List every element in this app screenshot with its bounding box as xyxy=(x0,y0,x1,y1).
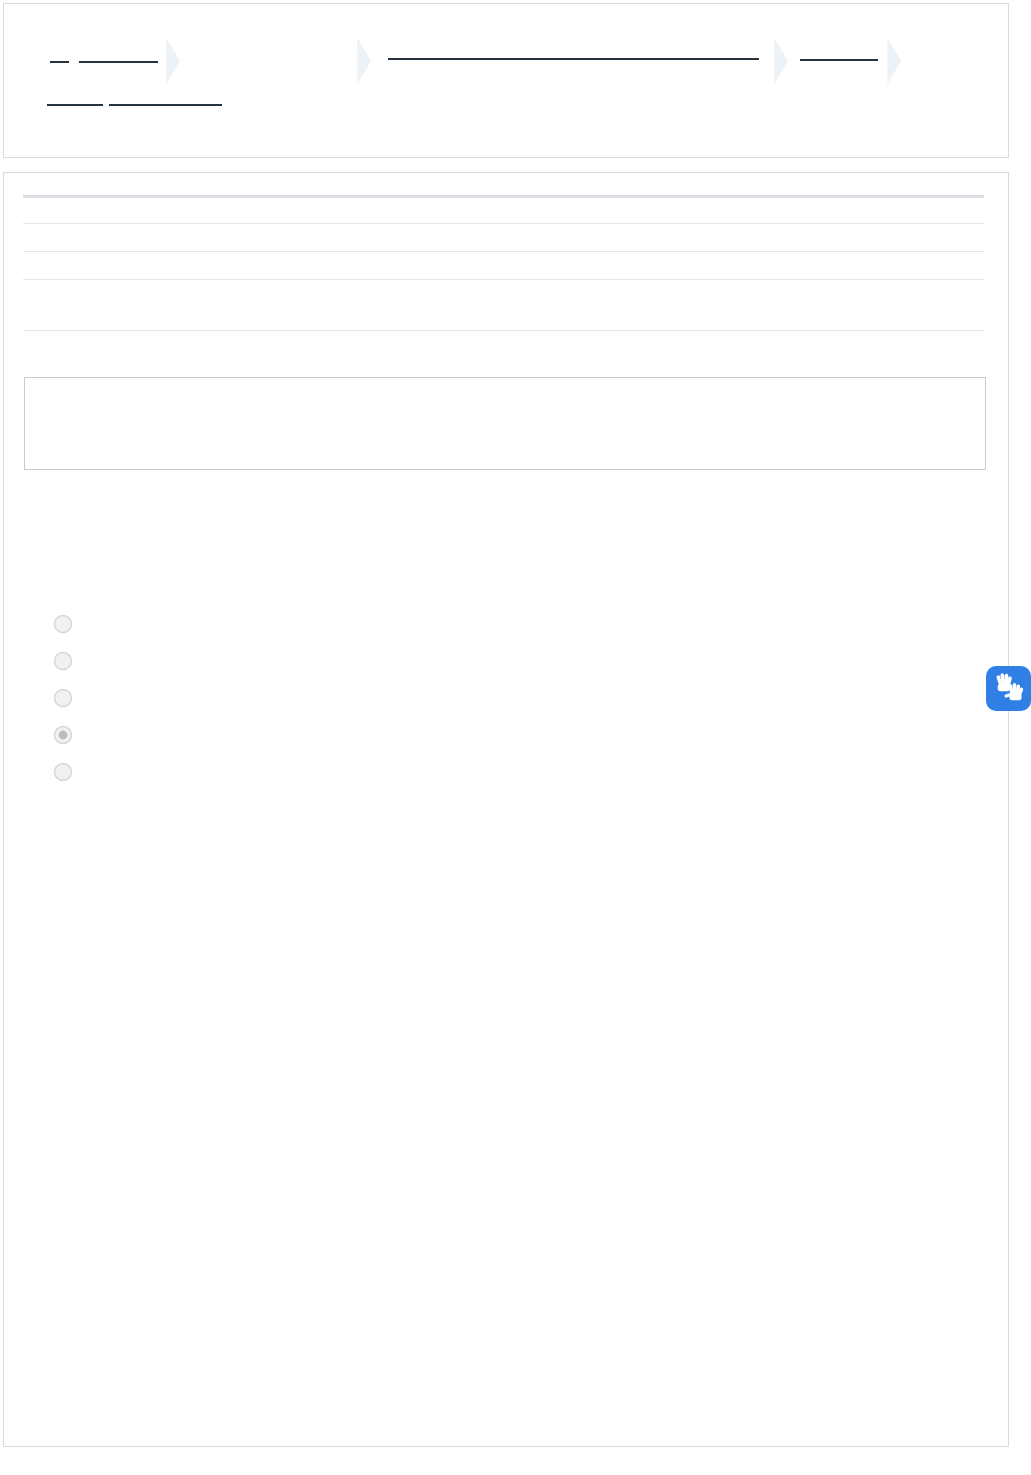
button[interactable]: Option xyxy=(52,650,74,672)
button[interactable]: Sign language accessibility xyxy=(986,666,1031,711)
button[interactable]: Option xyxy=(52,687,74,709)
button[interactable]: Option xyxy=(52,761,74,783)
button[interactable]: Selected option xyxy=(52,724,74,746)
button[interactable]: Option xyxy=(52,613,74,635)
button[interactable]: Text area xyxy=(24,377,986,470)
